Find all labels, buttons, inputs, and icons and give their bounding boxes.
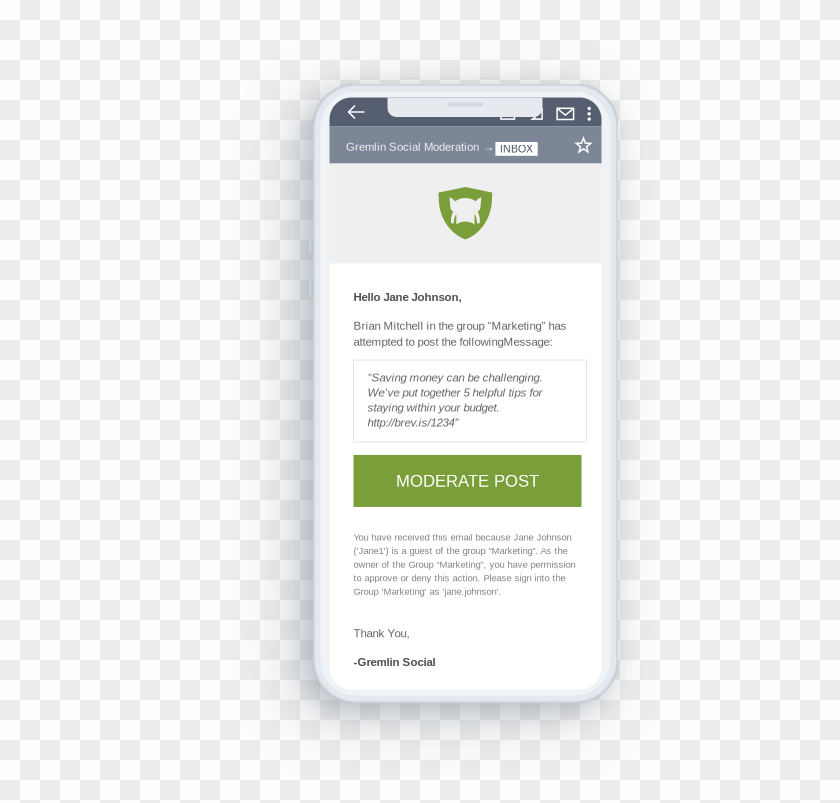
staticText: INBOX: [500, 143, 533, 155]
staticText: Gremlin Social Moderation: [346, 140, 479, 153]
staticText: We’ve put together 5 helpful tips for: [367, 386, 542, 399]
button[interactable]: Back: [338, 97, 374, 126]
button[interactable]: More options: [587, 107, 591, 120]
staticText: Brian Mitchell in the group “Marketing” …: [353, 319, 566, 348]
button[interactable]: Mark as unread: [556, 107, 574, 120]
staticText: http://brev.is/1234”: [367, 416, 458, 429]
staticText: “Saving money can be challenging.: [367, 371, 542, 384]
button[interactable]: Move to: [532, 108, 543, 120]
button[interactable]: MODERATE POST: [353, 455, 581, 507]
staticText: You have received this email because Jan…: [353, 532, 575, 597]
staticText: MODERATE POST: [396, 472, 539, 490]
button[interactable]: Star: [575, 137, 592, 154]
staticText: →: [483, 140, 495, 153]
staticText: Thank You,: [353, 627, 409, 640]
staticText: staying within your budget.: [367, 401, 499, 414]
staticText: Hello Jane Johnson,: [353, 290, 461, 303]
staticText: -Gremlin Social: [353, 656, 435, 668]
button[interactable]: Archive: [500, 114, 515, 120]
